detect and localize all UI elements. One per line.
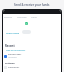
- button[interactable]: Verified: [25, 22, 28, 25]
- staticText: Payment sent: [8, 53, 22, 56]
- button[interactable]: View all transactions: [6, 49, 26, 52]
- staticText: Cards: [31, 16, 37, 19]
- button[interactable]: Learn more: [6, 31, 20, 34]
- staticText: Balance: [4, 16, 13, 19]
- staticText: Yesterday: [8, 56, 17, 59]
- staticText: Settings: [5, 61, 15, 64]
- button[interactable]: Action: [22, 30, 31, 34]
- staticText: Preferences: [8, 66, 20, 69]
- button[interactable]: Preferences: [4, 66, 60, 69]
- staticText: Send & receive your funds: [14, 3, 50, 7]
- staticText: Overview: [17, 16, 27, 19]
- staticText: Recent: [5, 44, 15, 48]
- button[interactable]: Payment sent: [4, 53, 60, 59]
